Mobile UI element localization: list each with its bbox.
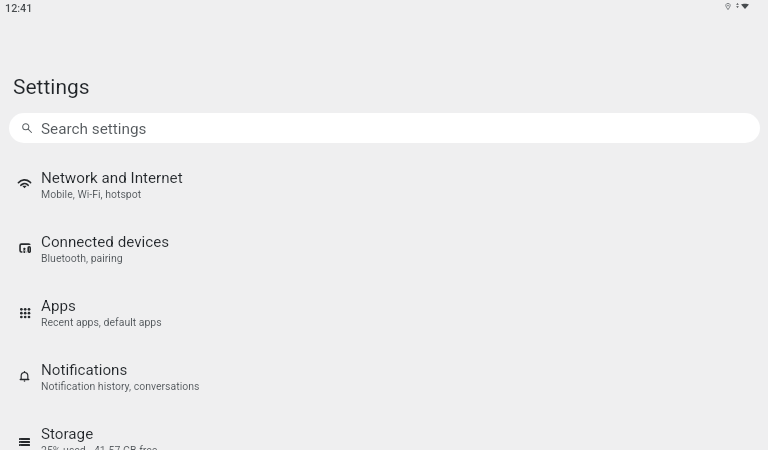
button[interactable]: Notifications xyxy=(0,352,768,416)
staticText: Mobile, Wi-Fi, hotspot xyxy=(41,188,142,200)
staticText: Notification history, conversations xyxy=(41,380,200,392)
button[interactable]: Storage xyxy=(0,416,768,450)
staticText: 25% used - 41.57 GB free xyxy=(41,444,158,450)
staticText: Settings xyxy=(13,75,90,100)
staticText: Connected devices xyxy=(41,233,170,251)
button[interactable]: Connected devices xyxy=(0,224,768,288)
staticText: Network and Internet xyxy=(41,169,183,187)
button[interactable]: Search settings xyxy=(9,113,760,143)
staticText: Search settings xyxy=(41,120,147,138)
button[interactable]: Apps xyxy=(0,288,768,352)
button[interactable]: Network and Internet xyxy=(0,160,768,224)
staticText: 12:41 xyxy=(5,2,33,15)
staticText: Storage xyxy=(41,425,94,443)
staticText: Recent apps, default apps xyxy=(41,316,162,328)
staticText: Notifications xyxy=(41,361,128,379)
staticText: Apps xyxy=(41,297,76,315)
staticText: Bluetooth, pairing xyxy=(41,252,123,264)
